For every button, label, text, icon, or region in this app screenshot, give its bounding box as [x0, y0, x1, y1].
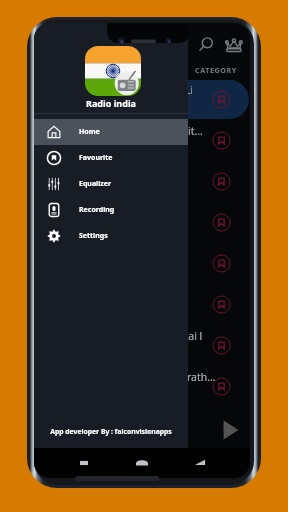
staticText: App developer By : falconvisionapps: [34, 427, 188, 436]
staticText: Radio Nasha 107.2 FM Mumbai live: [44, 329, 202, 343]
staticText: All India Radio FM Rainbow Hit…: [44, 124, 216, 138]
button[interactable]: CATEGORY: [182, 59, 250, 81]
button[interactable]: Home: [34, 119, 188, 145]
button[interactable]: All India Radio FM Rainbow Hit…: [34, 121, 249, 160]
staticText: Big FM 92.7: [44, 206, 164, 220]
staticText: Favourite: [79, 153, 113, 163]
button[interactable]: Favourite: [34, 145, 188, 171]
staticText: Radio City 91.1: [44, 165, 164, 179]
staticText: FM Radio: [44, 99, 144, 110]
button[interactable]: Home: [134, 455, 150, 471]
staticText: Radio Mirchi 98.3 FM Indore Live: [44, 83, 192, 97]
button[interactable]: Gyan Vani 105.6 FM Delhi Marath…: [34, 367, 249, 406]
button[interactable]: Back: [192, 455, 208, 471]
button[interactable]: Search: [195, 35, 217, 57]
button[interactable]: Recording: [34, 197, 188, 223]
button[interactable]: Radio City 91.1: [34, 162, 249, 201]
staticText: Settings: [79, 231, 108, 241]
button[interactable]: Big FM 92.7: [34, 203, 249, 242]
staticText: FM Radio: [44, 222, 144, 233]
staticText: STATIONS: [50, 65, 89, 75]
staticText: Home: [79, 127, 100, 137]
button[interactable]: Recents: [76, 455, 92, 471]
staticText: Radio india: [34, 97, 188, 109]
button[interactable]: Settings: [34, 223, 188, 249]
button[interactable]: Premium: [223, 35, 245, 57]
staticText: Equalizer: [79, 179, 112, 189]
staticText: Recording: [79, 205, 115, 215]
button[interactable]: FAVOURITE: [104, 59, 182, 81]
staticText: CATEGORY: [195, 65, 237, 75]
staticText: Gyan Vani 105.6 FM Delhi Marath…: [44, 370, 219, 384]
button[interactable]: STATIONS: [34, 59, 104, 81]
button[interactable]: Vividh Bharati: [34, 285, 249, 324]
button[interactable]: Play: [219, 418, 243, 444]
staticText: FM Radio: [44, 140, 144, 151]
button[interactable]: Equalizer: [34, 171, 188, 197]
button[interactable]: Radio Mirchi 98.3 FM Indore Live: [34, 80, 249, 119]
staticText: FAVOURITE: [121, 65, 166, 75]
button[interactable]: Radio Nasha 107.2 FM Mumbai live: [34, 326, 249, 365]
staticText: FM Radio: [44, 181, 144, 192]
button[interactable]: Red FM 93.5: [34, 244, 249, 283]
